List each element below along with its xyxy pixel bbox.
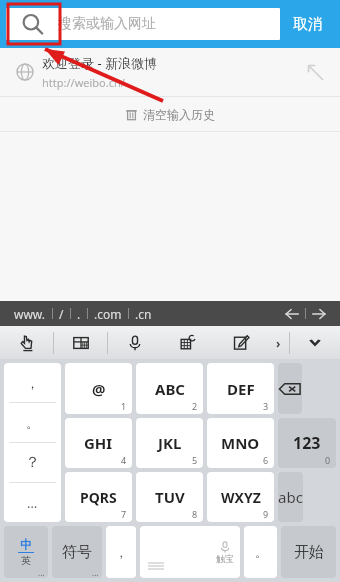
button[interactable]: 。 <box>4 403 61 442</box>
button[interactable]: 搜索或输入网址 <box>6 8 280 40</box>
staticText: 2 <box>192 400 198 412</box>
staticText: 触宝 <box>216 553 234 564</box>
staticText: 搜索或输入网址 <box>58 15 156 33</box>
staticText: 6 <box>263 454 269 466</box>
button[interactable]: 123 <box>278 418 336 468</box>
staticText: ... <box>92 567 99 578</box>
button[interactable]: . <box>71 306 87 322</box>
staticText: ， <box>115 545 127 560</box>
button[interactable]: 开始 <box>281 526 336 578</box>
staticText: TUV <box>155 487 185 507</box>
button[interactable]: .com <box>88 306 128 322</box>
button[interactable]: www. <box>8 306 52 322</box>
button[interactable]: … <box>4 483 61 522</box>
staticText: 1 <box>121 400 127 412</box>
button[interactable]: ， <box>4 363 61 402</box>
staticText: 3 <box>263 400 269 412</box>
button[interactable]: Voice input <box>108 326 161 359</box>
staticText: ， <box>26 375 39 391</box>
button[interactable]: Edit <box>214 326 267 359</box>
staticText: .cn <box>135 306 152 322</box>
staticText: @ <box>92 379 106 399</box>
button[interactable]: 符号 <box>52 526 102 578</box>
staticText: 符号 <box>62 543 92 562</box>
staticText: 0 <box>325 454 331 466</box>
button[interactable]: 清空输入历史 <box>0 97 340 131</box>
staticText: http://weibo.cn/ <box>42 75 125 90</box>
button[interactable]: ABC <box>136 363 203 414</box>
staticText: 。 <box>26 415 39 431</box>
button[interactable]: ？ <box>4 443 61 482</box>
staticText: 4 <box>121 454 127 466</box>
staticText: DEF <box>227 379 255 399</box>
staticText: 123 <box>293 432 321 454</box>
button[interactable]: Hide keyboard <box>290 326 340 359</box>
button[interactable]: / <box>53 306 70 322</box>
button[interactable]: More <box>267 326 289 359</box>
button[interactable]: 中 <box>4 526 48 578</box>
button[interactable]: MNO <box>207 418 274 468</box>
staticText: 开始 <box>294 543 324 562</box>
button[interactable]: 。 <box>244 526 277 578</box>
staticText: 欢迎登录 - 新浪微博 <box>42 54 157 72</box>
staticText: .com <box>94 306 122 322</box>
staticText: 5 <box>192 454 198 466</box>
button[interactable]: JKL <box>136 418 203 468</box>
staticText: ？ <box>25 453 40 472</box>
staticText: www. <box>14 306 46 322</box>
button[interactable]: PQRS <box>65 472 132 522</box>
button[interactable]: GHI <box>65 418 132 468</box>
staticText: 清空输入历史 <box>143 107 215 122</box>
button[interactable]: DEF <box>207 363 274 414</box>
staticText: WXYZ <box>221 488 261 507</box>
staticText: GHI <box>84 433 113 453</box>
staticText: … <box>27 494 38 512</box>
button[interactable]: Fill query <box>298 48 332 96</box>
staticText: abc <box>278 487 303 507</box>
staticText: / <box>59 306 64 322</box>
staticText: › <box>276 335 281 351</box>
button[interactable]: Backspace <box>278 363 302 414</box>
button[interactable]: abc <box>278 472 303 522</box>
button[interactable]: Space <box>140 526 240 578</box>
staticText: 。 <box>255 545 267 560</box>
staticText: 中 <box>20 537 32 552</box>
button[interactable]: Keyboard layout <box>54 326 107 359</box>
button[interactable]: @ <box>65 363 132 414</box>
staticText: ... <box>38 567 45 578</box>
staticText: 9 <box>263 508 269 520</box>
button[interactable]: Grid <box>161 326 214 359</box>
button[interactable]: ， <box>106 526 136 578</box>
staticText: JKL <box>158 433 182 453</box>
button[interactable]: TUV <box>136 472 203 522</box>
button[interactable]: 欢迎登录 - 新浪微博 <box>0 48 340 96</box>
button[interactable]: WXYZ <box>207 472 274 522</box>
staticText: 8 <box>192 508 198 520</box>
staticText: PQRS <box>80 488 117 507</box>
staticText: ABC <box>155 379 185 399</box>
button[interactable]: .cn <box>129 306 158 322</box>
staticText: MNO <box>221 433 260 453</box>
staticText: 7 <box>121 508 127 520</box>
button[interactable]: Next <box>306 301 332 326</box>
button[interactable]: Previous <box>279 301 305 326</box>
staticText: 取消 <box>293 15 323 34</box>
button[interactable]: 取消 <box>280 0 336 48</box>
button[interactable]: Handwriting <box>0 326 53 359</box>
staticText: 英 <box>21 554 31 567</box>
staticText: . <box>77 306 81 322</box>
